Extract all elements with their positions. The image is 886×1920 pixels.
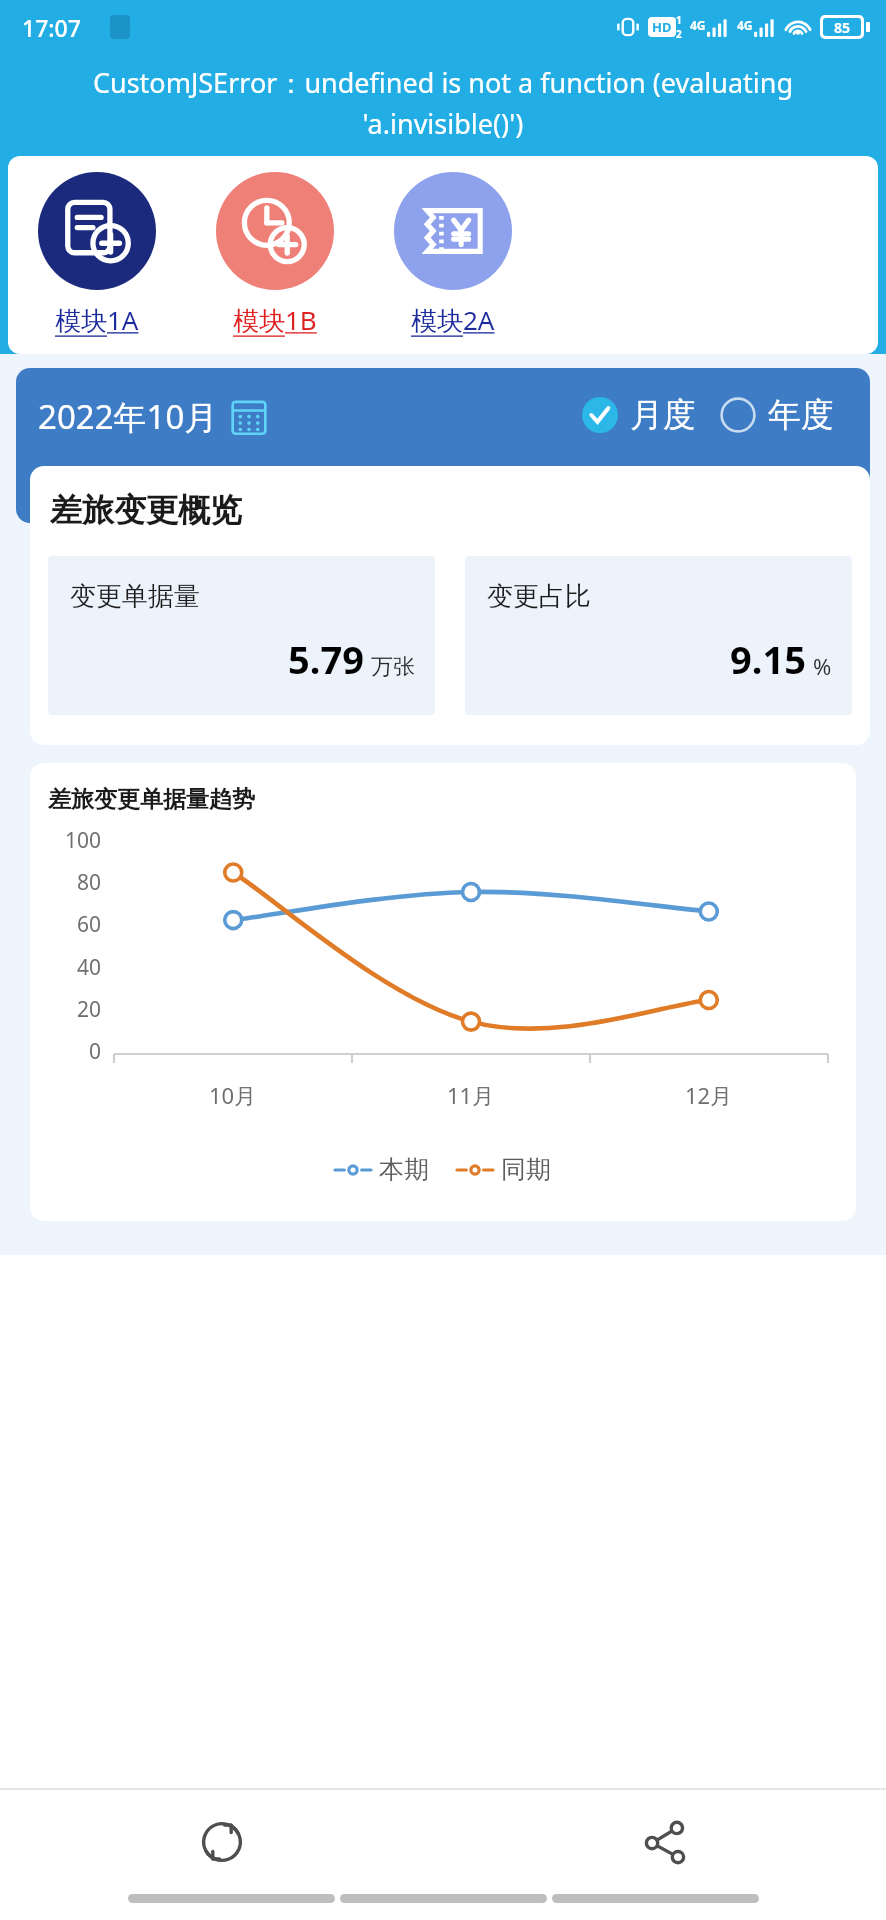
staticText: 4G — [737, 17, 753, 33]
staticText: 同期 — [501, 1154, 551, 1185]
staticText: 本期 — [379, 1154, 429, 1185]
staticText: 80 — [77, 868, 102, 897]
staticText: % — [813, 651, 832, 681]
staticText: 60 — [77, 910, 102, 939]
staticText: 5.79 — [288, 633, 364, 685]
button[interactable]: Refresh — [0, 1790, 443, 1894]
staticText: 0 — [89, 1037, 102, 1066]
staticText: 12月 — [685, 1080, 733, 1110]
button[interactable]: 模块2A — [364, 172, 542, 338]
staticText: 9.15 — [730, 633, 806, 685]
staticText: 17:07 — [22, 12, 81, 43]
staticText: 差旅变更概览 — [50, 490, 242, 530]
staticText: 2 — [676, 27, 682, 41]
staticText: 20 — [77, 995, 102, 1024]
button[interactable]: 年度 — [720, 394, 834, 436]
staticText: 11月 — [447, 1080, 495, 1110]
staticText: 85 — [834, 18, 851, 36]
button[interactable]: 本期 — [335, 1154, 429, 1185]
staticText: 模块1B — [233, 302, 317, 338]
button[interactable]: 2022年10月 — [38, 394, 268, 439]
button[interactable]: Share — [443, 1790, 886, 1894]
button[interactable]: 模块1B — [186, 172, 364, 338]
staticText: 变更单据量 — [70, 580, 200, 613]
staticText: 4G — [690, 17, 706, 33]
staticText: 40 — [77, 953, 102, 982]
staticText: HD — [652, 18, 672, 36]
staticText: CustomJSError：undefined is not a functio… — [14, 64, 872, 142]
staticText: 年度 — [768, 394, 834, 436]
button[interactable]: 模块1A — [8, 172, 186, 338]
button[interactable]: 月度 — [582, 394, 696, 436]
staticText: 2022年10月 — [38, 394, 218, 439]
staticText: 1 — [676, 13, 682, 27]
staticText: 变更占比 — [487, 580, 591, 613]
staticText: 模块1A — [55, 302, 139, 338]
staticText: 万张 — [371, 653, 415, 681]
staticText: 10月 — [209, 1080, 257, 1110]
button[interactable]: 同期 — [457, 1154, 551, 1185]
staticText: 100 — [65, 826, 102, 855]
staticText: 月度 — [630, 394, 696, 436]
staticText: 差旅变更单据量趋势 — [48, 785, 255, 814]
staticText: 模块2A — [411, 302, 495, 338]
